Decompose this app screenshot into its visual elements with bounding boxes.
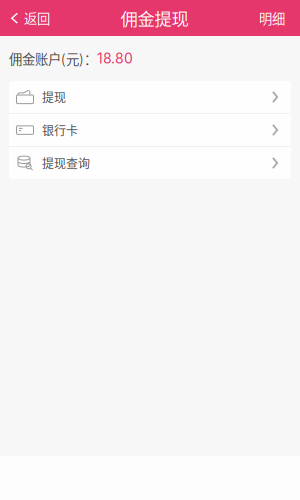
button[interactable]: 提现 bbox=[9, 81, 291, 113]
button[interactable]: 明细 bbox=[259, 0, 300, 36]
staticText: 提现查询 bbox=[42, 154, 90, 172]
staticText: 返回 bbox=[24, 8, 50, 28]
staticText: 18.80 bbox=[97, 50, 133, 67]
button[interactable]: 提现查询 bbox=[9, 147, 291, 179]
button[interactable]: 银行卡 bbox=[9, 114, 291, 146]
staticText: 明细 bbox=[259, 8, 285, 28]
staticText: 银行卡 bbox=[42, 121, 78, 139]
staticText: 佣金提现 bbox=[120, 5, 188, 31]
staticText: 提现 bbox=[42, 88, 66, 106]
staticText: 佣金账户(元)： bbox=[9, 49, 97, 68]
button[interactable]: 返回 bbox=[0, 0, 50, 36]
